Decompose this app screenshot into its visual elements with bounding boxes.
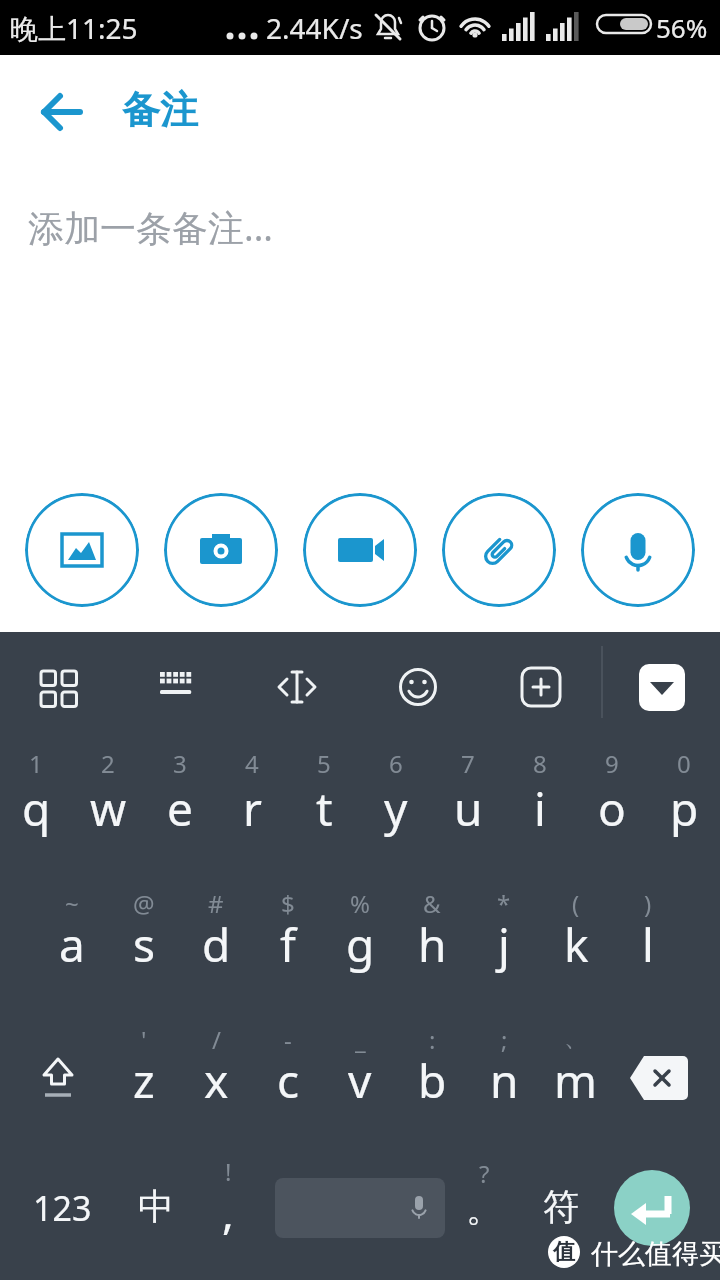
staticText: k [564, 913, 589, 976]
button[interactable]: y [360, 770, 432, 846]
staticText: 、 [564, 1023, 588, 1053]
staticText: d [202, 913, 231, 976]
button[interactable] [628, 1054, 690, 1102]
staticText: 中 [138, 1184, 174, 1229]
staticText: 7 [461, 747, 475, 777]
button[interactable]: r [216, 770, 288, 846]
button[interactable]: l [612, 906, 684, 982]
staticText: t [316, 777, 333, 840]
staticText: i [534, 777, 546, 840]
button[interactable]: k [540, 906, 612, 982]
staticText: l [642, 913, 654, 976]
button[interactable]: c [252, 1042, 324, 1118]
button[interactable] [394, 663, 442, 711]
button[interactable]: e [144, 770, 216, 846]
button[interactable]: i [504, 770, 576, 846]
staticText: q [22, 777, 51, 840]
staticText: 值 [553, 1238, 575, 1266]
staticText: # [208, 887, 224, 917]
button[interactable] [639, 664, 685, 711]
button[interactable] [581, 493, 695, 607]
staticText: 0 [677, 747, 691, 777]
staticText: 2.44K/s [266, 9, 363, 47]
button[interactable]: 。 [448, 1180, 520, 1236]
staticText: 56% [656, 10, 708, 45]
button[interactable]: m [540, 1042, 612, 1118]
staticText: 符 [543, 1184, 579, 1229]
staticText: ) [644, 887, 652, 917]
staticText: y [384, 777, 408, 840]
staticText: ' [141, 1023, 147, 1053]
button[interactable] [25, 493, 139, 607]
staticText: f [280, 913, 296, 976]
button[interactable]: b [396, 1042, 468, 1118]
staticText: 。 [466, 1186, 502, 1231]
button[interactable] [275, 1178, 445, 1238]
staticText: 1 [29, 747, 43, 777]
staticText: z [133, 1049, 155, 1112]
staticText: w [90, 777, 127, 840]
button[interactable]: t [288, 770, 360, 846]
button[interactable] [442, 493, 556, 607]
staticText: x [204, 1049, 229, 1112]
staticText: 备注 [122, 86, 198, 134]
button[interactable]: n [468, 1042, 540, 1118]
staticText: h [418, 913, 447, 976]
staticText: _ [355, 1023, 366, 1053]
staticText: 9 [605, 747, 619, 777]
staticText: / [212, 1023, 221, 1053]
staticText: c [277, 1049, 300, 1112]
staticText: ; [501, 1023, 508, 1053]
button[interactable]: a [36, 906, 108, 982]
button[interactable]: p [648, 770, 720, 846]
button[interactable]: g [324, 906, 396, 982]
staticText: e [167, 777, 193, 840]
button[interactable]: v [324, 1042, 396, 1118]
staticText: 什么值得买 [591, 1237, 720, 1271]
button[interactable] [33, 663, 81, 711]
button[interactable]: d [180, 906, 252, 982]
button[interactable]: 中 [120, 1178, 192, 1234]
staticText: 晚上11:25 [10, 9, 138, 47]
button[interactable]: h [396, 906, 468, 982]
staticText: % [350, 887, 370, 917]
staticText: & [423, 887, 441, 917]
button[interactable]: z [108, 1042, 180, 1118]
button[interactable]: j [468, 906, 540, 982]
button[interactable]: o [576, 770, 648, 846]
staticText: - [284, 1023, 292, 1053]
staticText: o [598, 777, 626, 840]
button[interactable]: 123 [26, 1180, 98, 1236]
button[interactable]: 符 [525, 1178, 597, 1234]
button[interactable]: f [252, 906, 324, 982]
button[interactable]: u [432, 770, 504, 846]
staticText: a [59, 913, 85, 976]
button[interactable]: , [192, 1182, 264, 1242]
button[interactable] [517, 663, 565, 711]
button[interactable]: x [180, 1042, 252, 1118]
button[interactable]: w [72, 770, 144, 846]
button[interactable] [152, 663, 200, 711]
button[interactable] [303, 493, 417, 607]
staticText: 4 [245, 747, 259, 777]
staticText: 6 [389, 747, 403, 777]
staticText: u [454, 777, 483, 840]
staticText: 5 [317, 747, 331, 777]
button[interactable] [28, 1048, 88, 1108]
staticText: ! [225, 1155, 232, 1185]
button[interactable] [273, 663, 321, 711]
button[interactable] [164, 493, 278, 607]
staticText: 123 [33, 1185, 92, 1231]
button[interactable]: q [0, 770, 72, 846]
button[interactable] [36, 90, 88, 134]
staticText: 3 [173, 747, 187, 777]
staticText: j [498, 913, 510, 976]
button[interactable] [614, 1170, 690, 1246]
staticText: g [346, 913, 375, 976]
staticText: 添加一条备注... [28, 203, 273, 252]
staticText: ( [572, 887, 580, 917]
staticText: v [348, 1049, 372, 1112]
staticText: : [429, 1023, 436, 1053]
staticText: n [490, 1049, 519, 1112]
button[interactable]: s [108, 906, 180, 982]
